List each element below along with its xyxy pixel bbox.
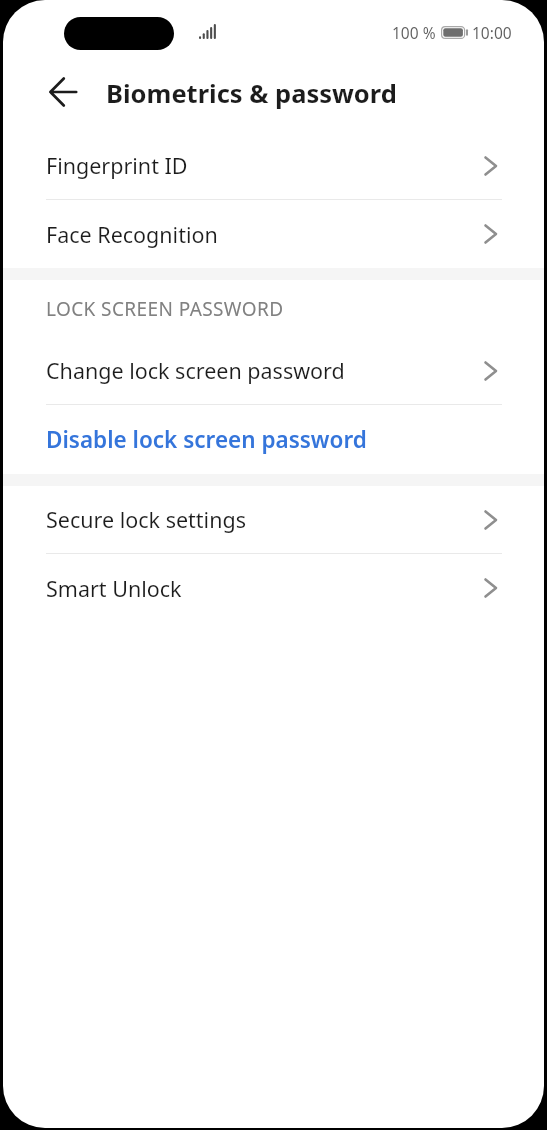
staticText: Face Recognition: [46, 220, 218, 249]
button[interactable]: Smart Unlock: [3, 554, 544, 622]
button[interactable]: Face Recognition: [3, 200, 544, 268]
staticText: 10:00: [472, 22, 512, 43]
button[interactable]: Secure lock settings: [3, 486, 544, 553]
staticText: Fingerprint ID: [46, 151, 188, 180]
button[interactable]: Fingerprint ID: [3, 132, 544, 199]
staticText: Change lock screen password: [46, 356, 345, 385]
staticText: Smart Unlock: [46, 574, 182, 603]
staticText: Biometrics & password: [106, 76, 397, 111]
button[interactable]: Change lock screen password: [3, 337, 544, 404]
staticText: Secure lock settings: [46, 505, 246, 534]
staticText: 100 %: [392, 22, 436, 43]
button[interactable]: [49, 77, 77, 107]
staticText: LOCK SCREEN PASSWORD: [46, 296, 284, 322]
button[interactable]: Disable lock screen password: [3, 405, 544, 474]
staticText: Disable lock screen password: [46, 424, 367, 455]
